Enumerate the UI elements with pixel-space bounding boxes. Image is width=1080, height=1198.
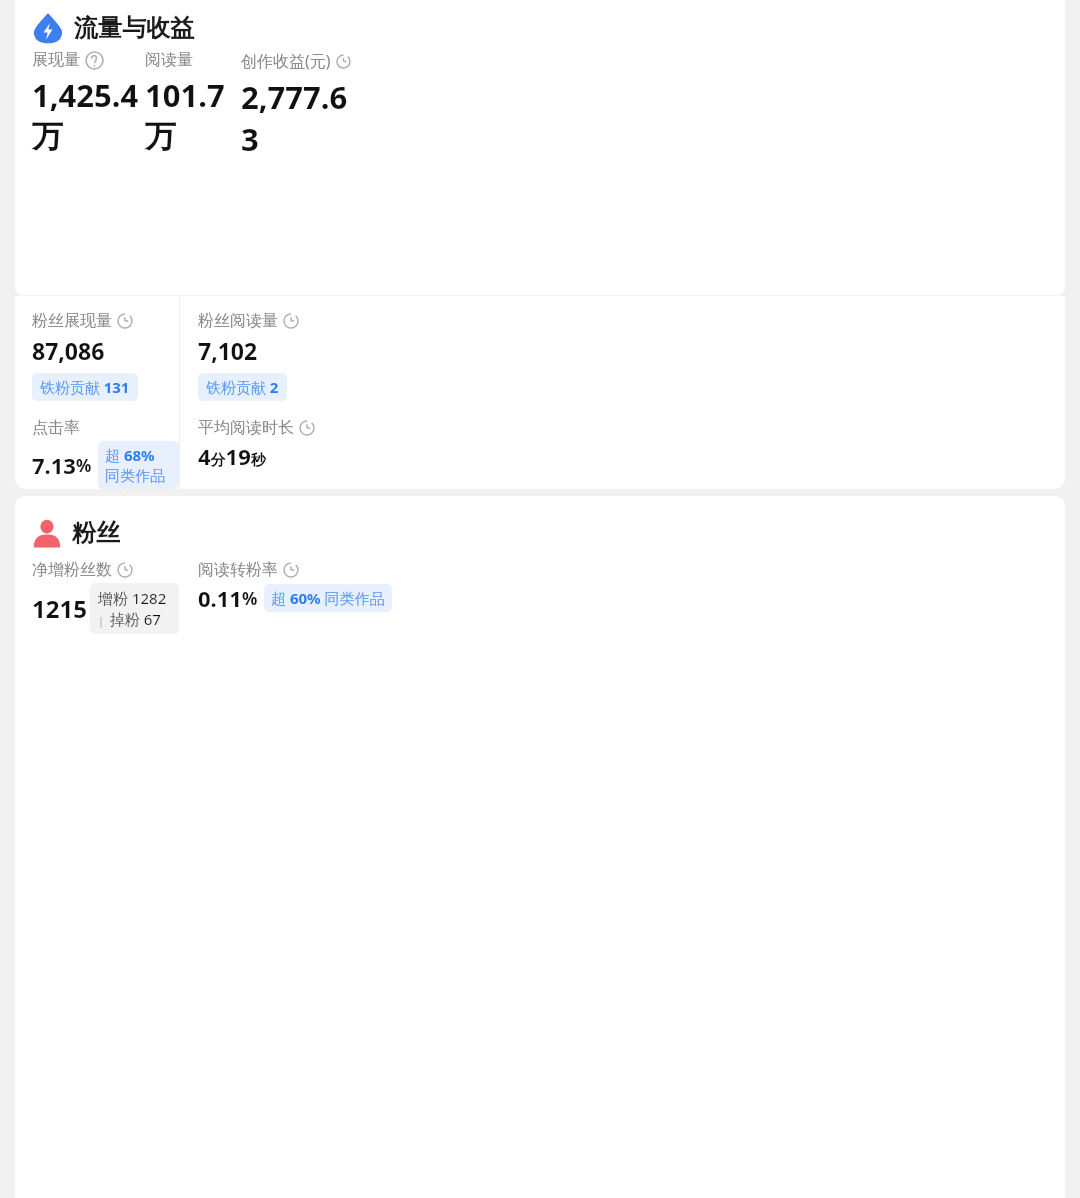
staticText: %	[76, 454, 92, 477]
button[interactable]: 创作收益(元)	[241, 50, 351, 160]
other: 数据更新时间	[283, 313, 299, 329]
staticText: 创作收益(元)	[241, 50, 331, 72]
staticText: 0.11	[198, 583, 242, 613]
staticText: 101.7万	[145, 74, 241, 156]
staticText: 阅读转粉率	[198, 560, 278, 580]
other: 粉丝	[32, 518, 62, 548]
button[interactable]: 说明	[85, 51, 104, 70]
staticText: %	[242, 587, 258, 610]
other: 数据更新时间	[117, 562, 133, 578]
other: 数据更新时间	[283, 562, 299, 578]
button[interactable]: 超 60% 同类作品	[264, 584, 392, 612]
button[interactable]: 增粉 1282 | 掉粉 67	[90, 583, 179, 634]
button[interactable]: 超 68% 同类作品	[98, 441, 179, 489]
other: 流量与收益	[32, 12, 64, 44]
staticText: 净增粉丝数	[32, 560, 112, 580]
other: 数据更新时间	[299, 420, 315, 436]
staticText: 铁粉贡献 2	[206, 377, 279, 397]
button[interactable]: 阅读量	[145, 50, 241, 156]
staticText: 粉丝	[72, 518, 120, 548]
staticText: 展现量	[32, 50, 80, 70]
staticText: 87,086	[32, 335, 105, 366]
staticText: 1,425.4万	[32, 74, 145, 156]
button[interactable]: 流量与收益	[32, 12, 1065, 44]
other: 数据更新时间	[117, 313, 133, 329]
staticText: 阅读量	[145, 50, 193, 70]
staticText: 2,777.63	[241, 76, 351, 160]
button[interactable]: 粉丝	[32, 518, 1065, 548]
staticText: 点击率	[32, 418, 80, 438]
button[interactable]: 粉丝阅读量	[198, 311, 299, 331]
staticText: 流量与收益	[74, 13, 194, 43]
staticText: 7,102	[198, 335, 258, 366]
staticText: 4分19秒	[198, 441, 266, 471]
button[interactable]: 粉丝展现量	[32, 311, 133, 331]
button[interactable]: 点击率	[32, 418, 80, 438]
staticText: 铁粉贡献 131	[40, 377, 130, 397]
staticText: 粉丝阅读量	[198, 311, 278, 331]
staticText: 7.13	[32, 450, 76, 480]
staticText: 粉丝展现量	[32, 311, 112, 331]
button[interactable]: 铁粉贡献 2	[198, 373, 287, 401]
staticText: 超 68% 同类作品	[105, 445, 172, 485]
button[interactable]: 阅读转粉率	[198, 560, 299, 580]
button[interactable]: 净增粉丝数	[32, 560, 133, 580]
button[interactable]: 展现量	[32, 50, 145, 156]
button[interactable]: 铁粉贡献 131	[32, 373, 138, 401]
staticText: 1215	[32, 592, 87, 625]
button[interactable]: 平均阅读时长	[198, 418, 315, 438]
staticText: 超 60% 同类作品	[271, 588, 385, 608]
other: 数据更新时间	[336, 53, 351, 70]
staticText: 平均阅读时长	[198, 418, 294, 438]
staticText: 增粉 1282 | 掉粉 67	[98, 588, 171, 629]
